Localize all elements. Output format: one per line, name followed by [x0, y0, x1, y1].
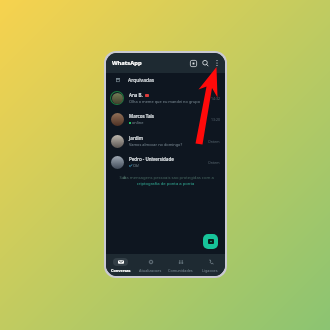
staticText: Vamos almocar no domingo?: [129, 142, 183, 147]
staticText: Suas mensagens pessoais sao protegidas c…: [115, 175, 216, 186]
button[interactable]: New chat: [203, 234, 218, 249]
staticText: Jardim: [129, 135, 143, 141]
staticText: Atualizacoes: [139, 268, 162, 273]
button[interactable]: Comunidades: [165, 258, 195, 273]
staticText: Ok!: [133, 163, 140, 168]
staticText: Arquivadas: [128, 77, 155, 84]
staticText: Pedro - Universidade: [129, 156, 174, 162]
staticText: 13:20: [211, 117, 220, 122]
button[interactable]: Atualizacoes: [135, 258, 165, 273]
button[interactable]: Ligacoes: [195, 258, 225, 273]
staticText: online: [132, 120, 144, 125]
button[interactable]: Marcos Tais: [106, 108, 225, 130]
button[interactable]: Ana B.: [106, 87, 225, 109]
button[interactable]: Search: [199, 57, 211, 69]
button[interactable]: Arquivadas: [106, 73, 225, 87]
button[interactable]: Pedro - Universidade: [106, 151, 225, 173]
button[interactable]: Scan QR code: [187, 57, 199, 69]
staticText: Comunidades: [168, 268, 193, 273]
staticText: Ontem: [208, 139, 220, 144]
button[interactable]: Jardim: [106, 130, 225, 152]
button[interactable]: More options: [211, 57, 223, 69]
staticText: Ligacoes: [202, 268, 218, 273]
staticText: WhatsApp: [112, 59, 142, 67]
staticText: Ana B.: [129, 92, 143, 98]
staticText: Conversas: [111, 268, 131, 273]
staticText: Ontem: [208, 160, 220, 165]
staticText: Olha o meme que eu mandei no grupo ontem: [129, 99, 208, 104]
staticText: Marcos Tais: [129, 113, 154, 119]
staticText: 14:32: [211, 96, 220, 101]
button[interactable]: Conversas: [106, 258, 135, 273]
